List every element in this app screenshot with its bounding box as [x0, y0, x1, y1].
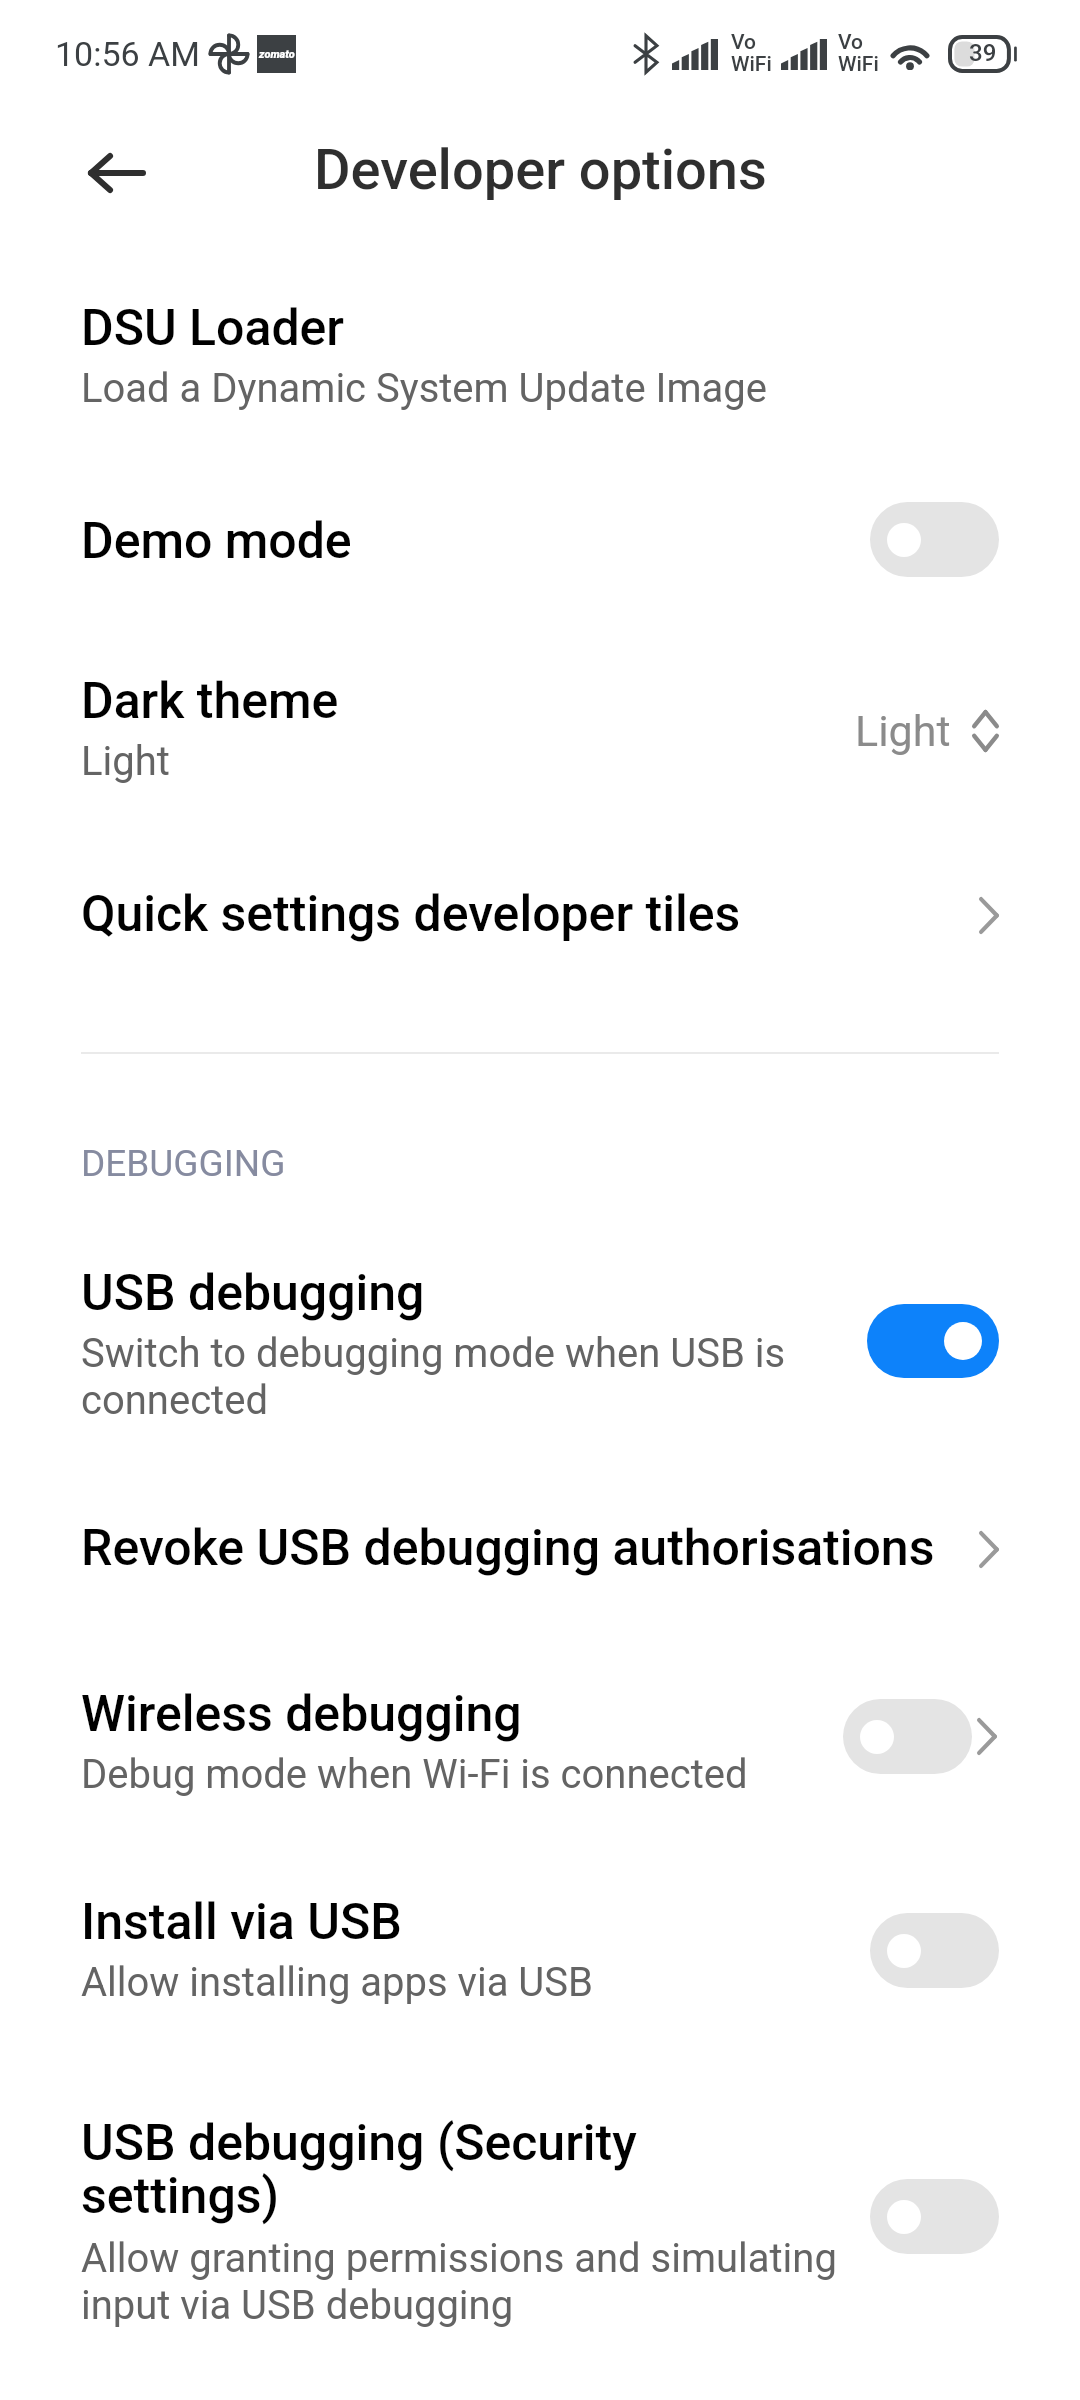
staticText: USB debugging	[81, 1268, 425, 1321]
staticText: Developer options	[314, 137, 767, 203]
staticText: 39	[969, 39, 997, 67]
button[interactable]: USB debugging	[0, 1268, 1080, 1424]
staticText: Debug mode when Wi-Fi is connected	[81, 1751, 748, 1798]
staticText: Quick settings developer tiles	[81, 889, 741, 942]
button[interactable]: Toggle	[843, 1699, 972, 1774]
staticText: Light	[81, 738, 170, 785]
staticText: Vo	[731, 32, 756, 54]
staticText: WiFi	[731, 54, 772, 76]
button[interactable]: Dark theme	[0, 676, 1080, 785]
staticText: Revoke USB debugging authorisations	[81, 1523, 935, 1576]
staticText: Allow installing apps via USB	[81, 1959, 593, 2006]
button[interactable]: Toggle	[870, 1913, 999, 1988]
staticText: Dark theme	[81, 676, 339, 729]
staticText: Load a Dynamic System Update Image	[81, 365, 767, 412]
button[interactable]: Toggle	[867, 1304, 999, 1378]
staticText: DSU Loader	[81, 303, 345, 356]
staticText: DEBUGGING	[81, 1140, 286, 1186]
staticText: Switch to debugging mode when USB is con…	[81, 1330, 816, 1424]
button[interactable]: DSU Loader	[0, 303, 1080, 412]
button[interactable]: Wireless debugging	[0, 1689, 1080, 1798]
button[interactable]: Revoke USB debugging authorisations	[0, 1523, 1080, 1576]
button[interactable]: Quick settings developer tiles	[0, 889, 1080, 942]
staticText: Vo	[838, 32, 863, 54]
staticText: zomato	[259, 48, 295, 61]
button[interactable]: Toggle	[870, 502, 999, 577]
staticText: Light	[855, 705, 951, 757]
staticText: 10:56 AM	[55, 34, 200, 74]
staticText: Allow granting permissions and simulatin…	[81, 2235, 841, 2329]
staticText: WiFi	[838, 54, 879, 76]
button[interactable]: Install via USB	[0, 1897, 1080, 2006]
button[interactable]: USB debugging (Security settings)	[0, 2118, 1080, 2329]
button[interactable]: Back	[81, 137, 153, 209]
staticText: Wireless debugging	[81, 1689, 522, 1742]
button[interactable]: Toggle	[870, 2179, 999, 2254]
staticText: USB debugging (Security settings)	[81, 2118, 841, 2224]
staticText: Demo mode	[81, 516, 352, 569]
button[interactable]: Demo mode	[0, 505, 1080, 580]
staticText: Install via USB	[81, 1897, 402, 1950]
